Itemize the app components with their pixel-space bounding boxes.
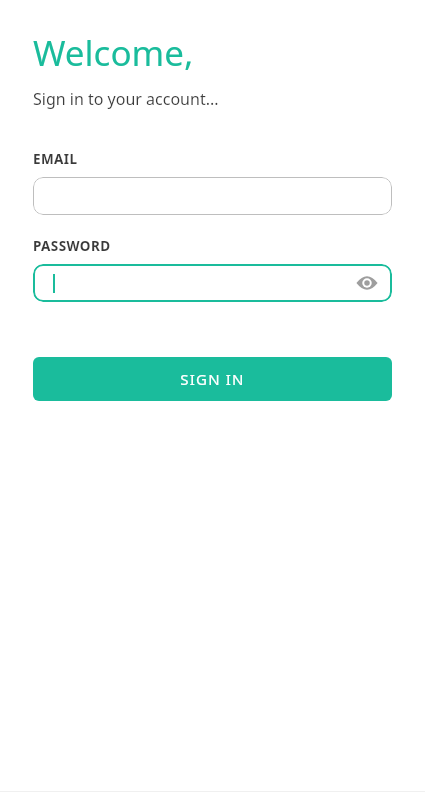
staticText: Sign in to your account... (33, 88, 219, 110)
button[interactable]: Show password (33, 264, 392, 302)
button[interactable]: SIGN IN (33, 357, 392, 401)
button[interactable] (33, 177, 392, 215)
button[interactable]: Show password (354, 270, 380, 296)
staticText: SIGN IN (180, 369, 245, 389)
staticText: EMAIL (33, 150, 78, 168)
staticText: PASSWORD (33, 237, 111, 255)
staticText: Welcome, (33, 29, 194, 77)
